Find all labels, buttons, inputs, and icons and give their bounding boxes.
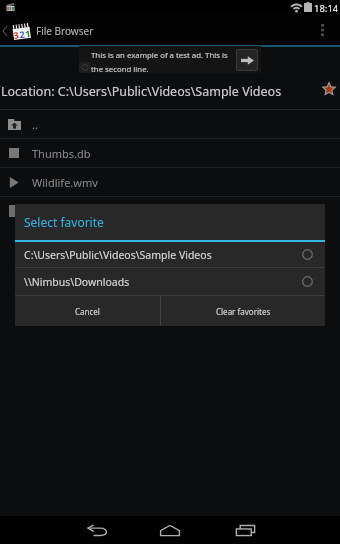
button[interactable]: Back bbox=[74, 516, 122, 544]
button[interactable]: Wildlife.wmv bbox=[0, 168, 340, 196]
staticText: 2 bbox=[18, 27, 26, 39]
staticText: File Browser bbox=[36, 24, 94, 38]
button[interactable]: .. bbox=[0, 110, 340, 138]
button[interactable]: Home bbox=[146, 516, 194, 544]
button[interactable]: Favorites bbox=[320, 80, 338, 98]
button[interactable]: Open ad bbox=[236, 49, 258, 71]
staticText: Wildlife.wmv bbox=[32, 175, 98, 190]
staticText: 1 bbox=[24, 27, 31, 38]
staticText: .. bbox=[32, 117, 38, 132]
button[interactable]: Recent apps bbox=[221, 516, 269, 544]
staticText: Cancel bbox=[75, 306, 100, 317]
staticText: \\Nimbus\Downloads bbox=[24, 275, 302, 289]
button[interactable]: C:\Users\Public\Videos\Sample Videos bbox=[15, 242, 325, 267]
button[interactable]: This is an example of a test ad. This is bbox=[79, 46, 261, 73]
staticText: Thumbs.db bbox=[32, 146, 91, 161]
button[interactable]: Clear favorites bbox=[161, 296, 325, 326]
button[interactable]: Thumbs.db bbox=[0, 139, 340, 167]
staticText: Select favorite bbox=[24, 214, 104, 230]
staticText: C:\Users\Public\Videos\Sample Videos bbox=[24, 248, 302, 262]
button[interactable]: 3 bbox=[1, 15, 94, 46]
staticText: Location: C:\Users\Public\Videos\Sample … bbox=[1, 83, 282, 100]
button[interactable]: Cancel bbox=[15, 296, 160, 326]
staticText: This is an example of a test ad. This is bbox=[91, 50, 228, 61]
staticText: 3 bbox=[13, 28, 20, 40]
staticText: the second line. bbox=[91, 64, 149, 75]
staticText: Clear favorites bbox=[216, 306, 271, 317]
button[interactable]: More options bbox=[304, 14, 340, 45]
staticText: 18:14 bbox=[314, 2, 339, 15]
button[interactable]: \\Nimbus\Downloads bbox=[15, 268, 325, 295]
